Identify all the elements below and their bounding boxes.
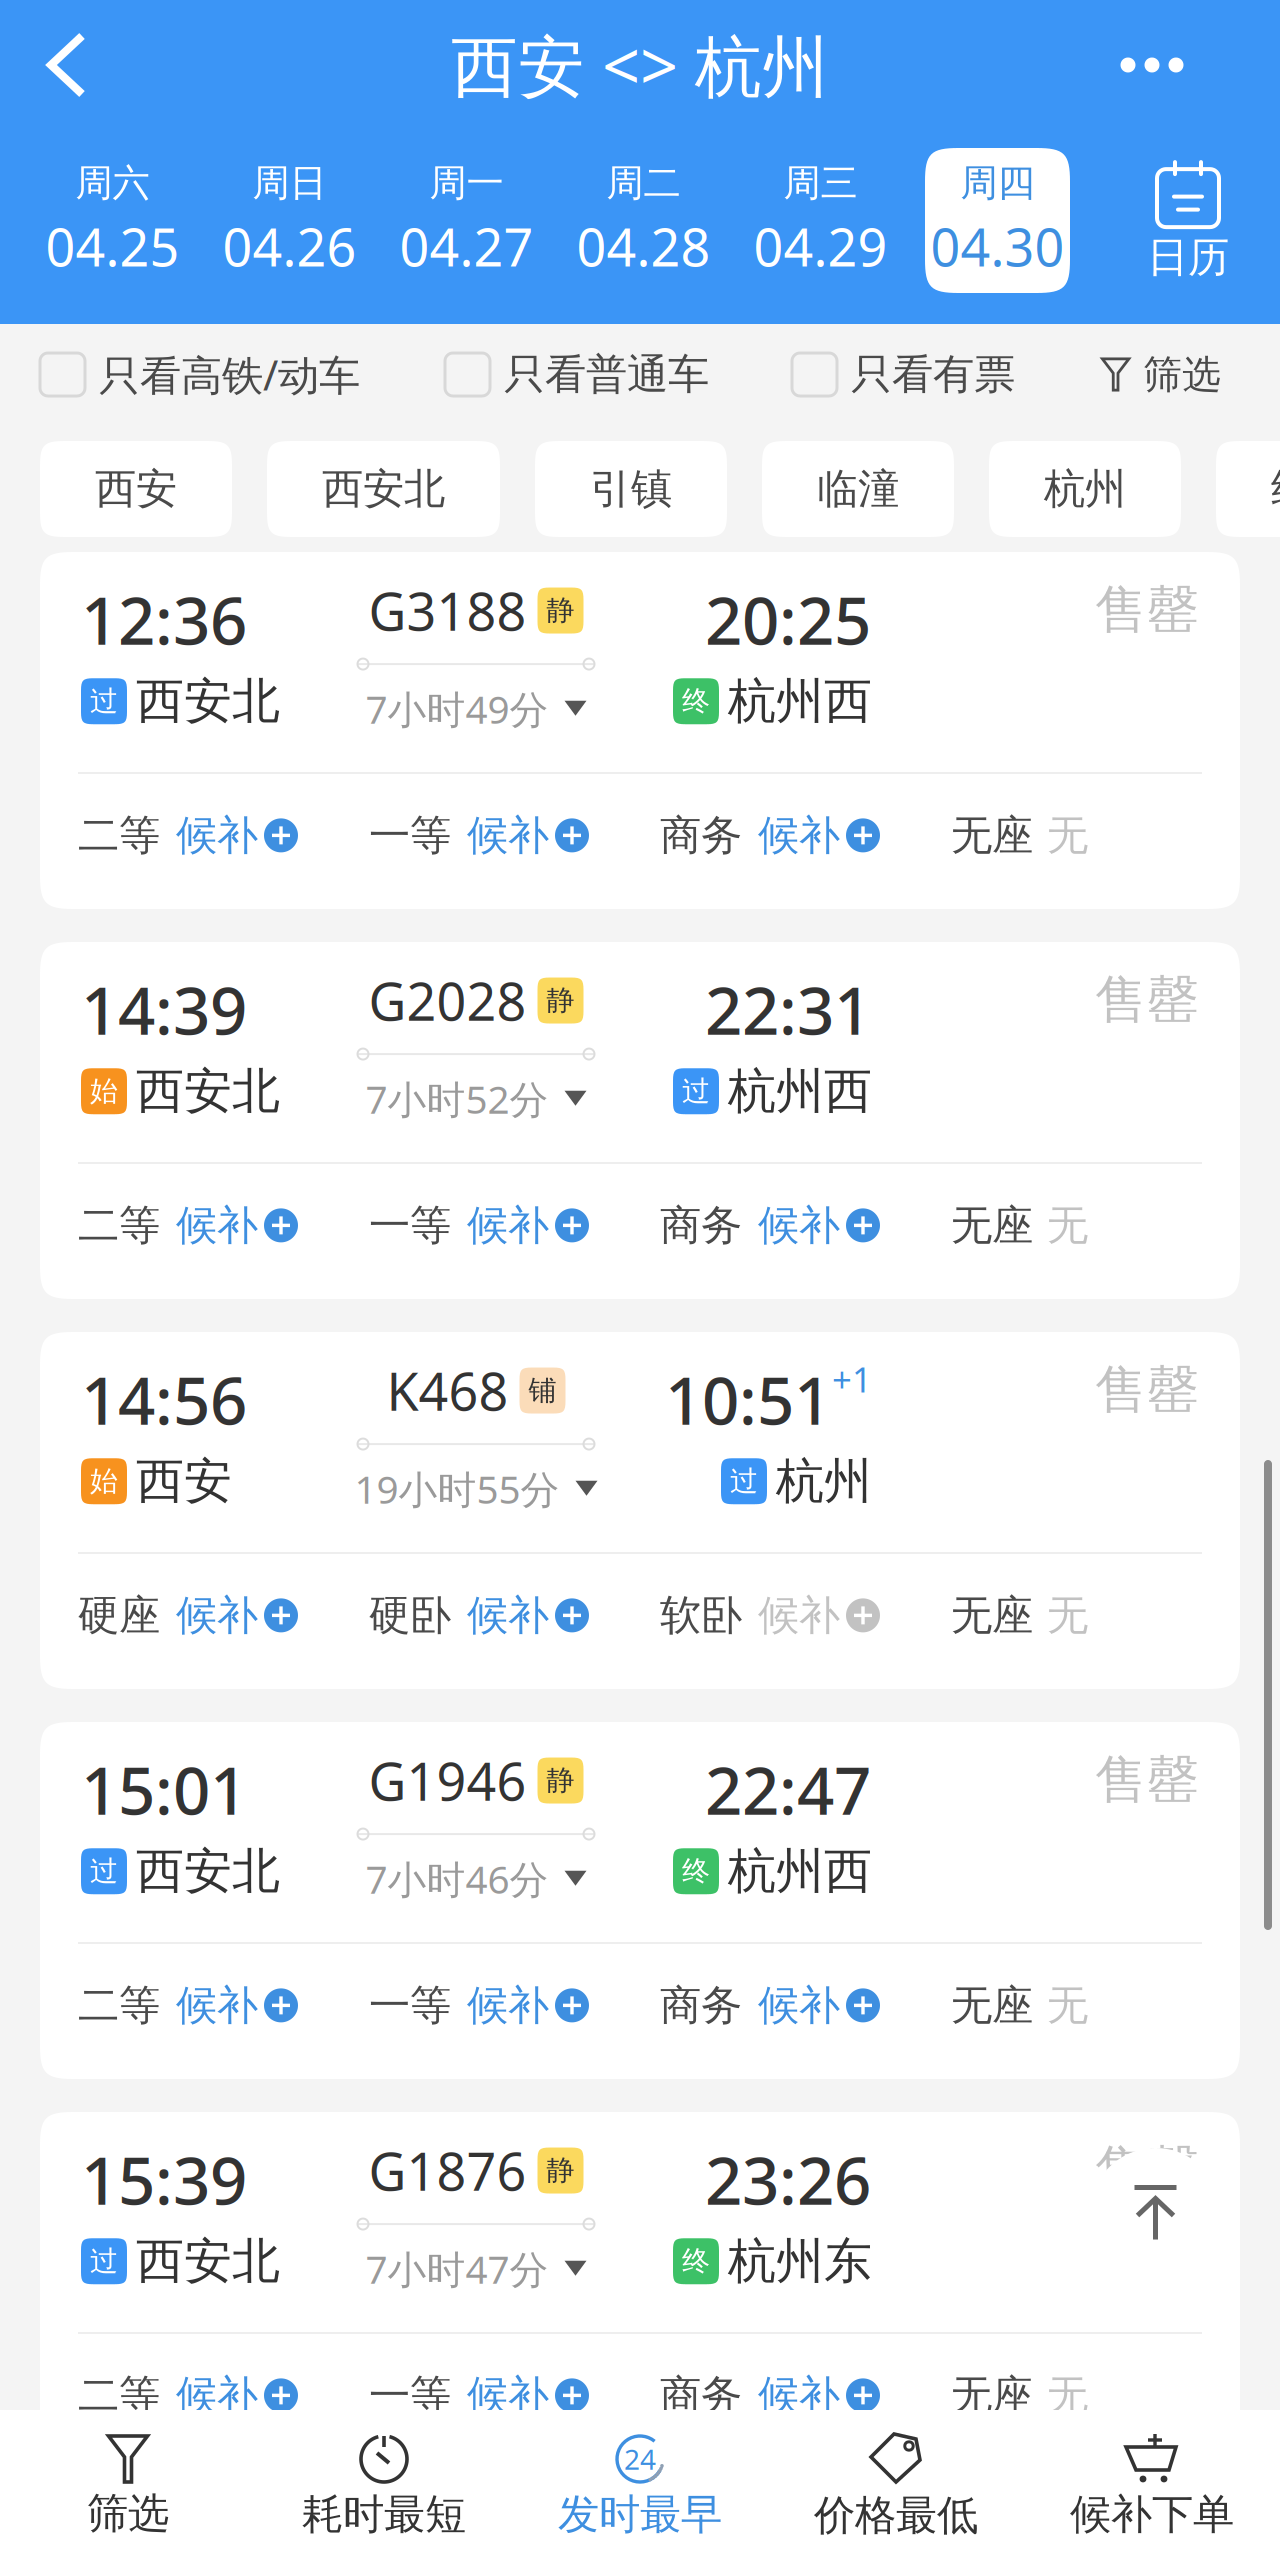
staticText: 20:25	[705, 576, 871, 663]
staticText: +1	[832, 1356, 872, 1402]
button[interactable]: 西安	[40, 441, 232, 537]
button[interactable]: 临潼	[762, 441, 954, 537]
button[interactable]: 筛选	[0, 2412, 256, 2549]
staticText: 7小时52分	[365, 1073, 548, 1124]
staticText: 始	[90, 1464, 118, 1498]
staticText: 西安北	[136, 1062, 280, 1121]
button[interactable]: 周一	[394, 148, 539, 293]
staticText: 二等	[78, 2370, 160, 2421]
button[interactable]: 只看有票	[792, 349, 1015, 400]
staticText: 无	[1047, 1980, 1088, 2031]
staticText: G1946	[368, 1746, 526, 1815]
staticText: 无座	[951, 1980, 1033, 2031]
staticText: 引镇	[590, 464, 672, 514]
staticText: 过	[90, 1854, 118, 1888]
button[interactable]: 候补下单	[1024, 2411, 1280, 2550]
staticText: 杭州西	[728, 672, 872, 731]
staticText: 商务	[660, 1200, 742, 1251]
button[interactable]: 24	[512, 2411, 768, 2550]
staticText: 硬卧	[369, 1590, 451, 1641]
button[interactable]: 耗时最短	[256, 2411, 512, 2550]
staticText: 候补	[176, 1590, 258, 1641]
staticText: 西安北	[136, 1842, 280, 1901]
staticText: 无	[1047, 810, 1088, 861]
button[interactable]: 14:56	[40, 1332, 1240, 1689]
button[interactable]: 价格最低	[768, 2410, 1024, 2551]
staticText: 筛选	[87, 2488, 169, 2539]
staticText: 静	[546, 2153, 574, 2188]
staticText: 周日	[252, 160, 326, 206]
button[interactable]: 回到顶部	[1090, 2148, 1221, 2279]
staticText: 西安北	[322, 464, 445, 514]
button[interactable]: 日历	[1102, 148, 1274, 293]
button[interactable]: 更多	[1082, 20, 1280, 110]
staticText: 10:51	[665, 1356, 831, 1443]
button[interactable]: 14:39	[40, 942, 1240, 1299]
staticText: 04.26	[222, 212, 356, 281]
staticText: 无	[1047, 1590, 1088, 1641]
staticText: 23:26	[705, 2136, 871, 2223]
staticText: 候补	[467, 810, 549, 861]
staticText: 04.29	[753, 212, 887, 281]
staticText: 商务	[660, 2370, 742, 2421]
staticText: 无	[1047, 2370, 1088, 2421]
staticText: 一等	[369, 2370, 451, 2421]
button[interactable]: 周三	[748, 148, 893, 293]
staticText: 候补	[467, 1590, 549, 1641]
staticText: 候补	[758, 1980, 840, 2031]
button[interactable]: 15:39	[40, 2112, 1240, 2469]
staticText: 04.28	[576, 212, 710, 281]
staticText: 15:39	[81, 2136, 247, 2223]
staticText: 候补	[467, 2370, 549, 2421]
staticText: 发时最早	[558, 2489, 722, 2540]
staticText: 一等	[369, 1980, 451, 2031]
button[interactable]: 周日	[217, 148, 362, 293]
button[interactable]: 返回	[0, 7, 119, 123]
staticText: 无座	[951, 1590, 1033, 1641]
button[interactable]: 引镇	[535, 441, 727, 537]
button[interactable]: 只看普通车	[445, 349, 709, 400]
staticText: 西安 <> 杭州	[451, 21, 829, 109]
staticText: 候补下单	[1070, 2489, 1234, 2540]
button[interactable]: 15:01	[40, 1722, 1240, 2079]
staticText: 一等	[369, 1200, 451, 1251]
staticText: 临潼	[817, 464, 899, 514]
button[interactable]: 周四	[925, 148, 1070, 293]
staticText: 候补	[467, 1200, 549, 1251]
button[interactable]: 杭州	[989, 441, 1181, 537]
staticText: 杭州	[1044, 464, 1126, 514]
staticText: 价格最低	[814, 2490, 978, 2541]
button[interactable]: 只看高铁/动车	[40, 347, 360, 402]
staticText: 无座	[951, 1200, 1033, 1251]
staticText: 只看普通车	[504, 349, 709, 400]
staticText: 杭州	[776, 1452, 872, 1511]
staticText: G2028	[368, 966, 526, 1035]
staticText: 候补	[176, 810, 258, 861]
staticText: 无	[1047, 1200, 1088, 1251]
button[interactable]: 西安北	[267, 441, 500, 537]
staticText: 候补	[758, 1200, 840, 1251]
staticText: 候补	[176, 1200, 258, 1251]
staticText: 19小时55分	[354, 1463, 559, 1514]
staticText: 候补	[176, 2370, 258, 2421]
staticText: 周六	[75, 160, 149, 206]
staticText: 二等	[78, 810, 160, 861]
button[interactable]: 筛选	[1101, 351, 1239, 398]
button[interactable]: 周二	[571, 148, 716, 293]
staticText: 14:39	[81, 966, 247, 1053]
staticText: 铺	[528, 1373, 556, 1408]
staticText: 过	[682, 1074, 710, 1108]
staticText: 周三	[783, 160, 857, 206]
button[interactable]: 12:36	[40, 552, 1240, 909]
staticText: 过	[90, 684, 118, 718]
staticText: 候补	[176, 1980, 258, 2031]
staticText: 筛选	[1143, 351, 1221, 398]
staticText: 西安北	[136, 2232, 280, 2291]
staticText: 7小时47分	[365, 2243, 548, 2294]
staticText: 04.30	[930, 212, 1064, 281]
button[interactable]: 绍兴	[1216, 441, 1280, 537]
staticText: 售罄	[1095, 968, 1199, 1032]
staticText: 无座	[951, 810, 1033, 861]
button[interactable]: 周六	[40, 148, 185, 293]
staticText: 商务	[660, 810, 742, 861]
